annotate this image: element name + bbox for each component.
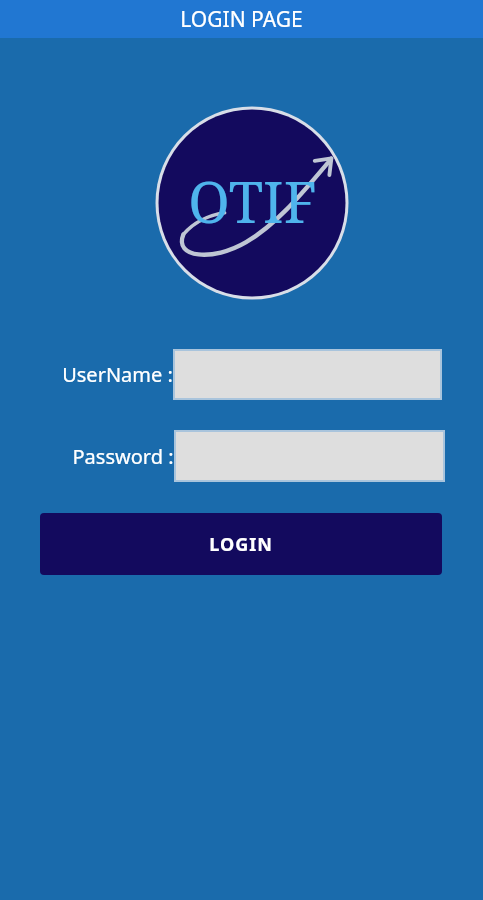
button[interactable]: LOGIN	[40, 513, 442, 575]
staticText: LOGIN	[209, 532, 273, 557]
staticText: OTIF	[188, 163, 317, 239]
staticText: Password :	[72, 443, 174, 470]
staticText: LOGIN PAGE	[180, 5, 303, 34]
staticText: UserName :	[62, 361, 173, 388]
